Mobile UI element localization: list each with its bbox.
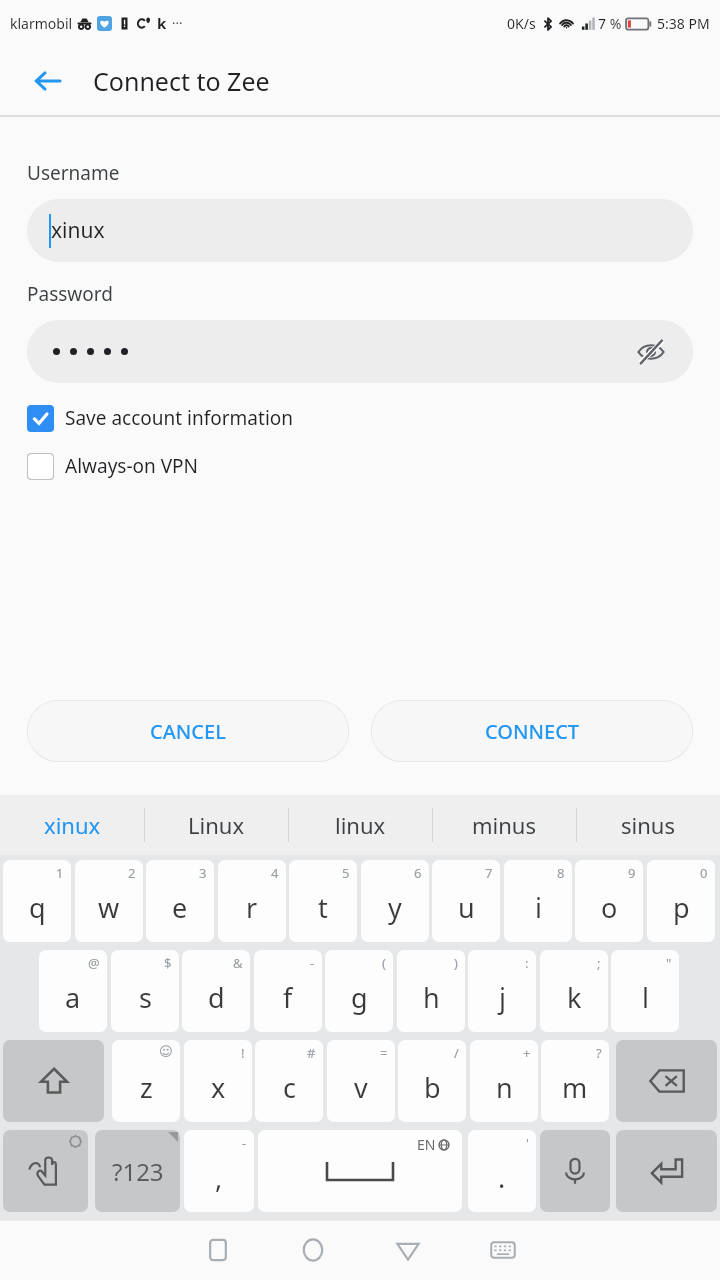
staticText: 3 [199, 864, 207, 882]
button[interactable]: p [647, 860, 715, 942]
staticText: r [246, 889, 258, 926]
staticText: Username [27, 160, 120, 186]
button[interactable]: Handwriting [3, 1130, 88, 1212]
button[interactable]: . [468, 1130, 536, 1212]
button[interactable]: s [111, 950, 179, 1032]
staticText: 9 [628, 864, 636, 882]
button[interactable]: Hide keyboard [455, 1220, 550, 1280]
button[interactable]: v [327, 1040, 395, 1122]
button[interactable]: Save account information [27, 398, 693, 438]
button[interactable]: g [325, 950, 393, 1032]
staticText: CONNECT [485, 718, 580, 745]
staticText: ?123 [112, 1155, 164, 1188]
button[interactable]: h [397, 950, 465, 1032]
button[interactable]: CONNECT [371, 700, 693, 762]
staticText: t [318, 889, 328, 926]
button[interactable]: Enter [616, 1130, 717, 1212]
staticText: : [525, 954, 529, 972]
button[interactable]: i [504, 860, 572, 942]
button[interactable]: l [611, 950, 679, 1032]
button[interactable]: Shift [3, 1040, 104, 1122]
staticText: k [567, 979, 582, 1016]
button[interactable]: ?123 [95, 1130, 180, 1212]
staticText: h [423, 979, 440, 1016]
staticText: f [283, 979, 293, 1016]
staticText: minus [472, 810, 536, 840]
staticText: s [139, 979, 152, 1016]
staticText: = [380, 1044, 388, 1062]
button[interactable]: o [575, 860, 643, 942]
staticText: " [666, 954, 672, 972]
button[interactable]: c [255, 1040, 323, 1122]
staticText: 7 [485, 864, 493, 882]
button[interactable]: , [184, 1130, 254, 1212]
staticText: ) [454, 954, 458, 972]
staticText: w [98, 889, 120, 926]
button[interactable]: r [218, 860, 286, 942]
staticText: sinus [621, 810, 675, 840]
button[interactable]: linux [288, 795, 432, 855]
button[interactable]: d [182, 950, 250, 1032]
staticText: ! [241, 1044, 245, 1062]
staticText: n [496, 1069, 513, 1106]
staticText: o [601, 889, 618, 926]
button[interactable]: q [3, 860, 71, 942]
staticText: g [351, 979, 368, 1016]
staticText: ' [526, 1134, 529, 1152]
staticText: 5 [342, 864, 350, 882]
button[interactable]: t [289, 860, 357, 942]
button[interactable]: Recent apps [170, 1220, 265, 1280]
button[interactable]: k [540, 950, 608, 1032]
staticText: Always-on VPN [65, 453, 199, 479]
staticText: 6 [414, 864, 422, 882]
button[interactable]: x [184, 1040, 252, 1122]
button[interactable]: CANCEL [27, 700, 349, 762]
staticText: # [307, 1044, 316, 1062]
staticText: c [283, 1069, 296, 1106]
button[interactable]: Home [265, 1220, 360, 1280]
button[interactable]: Always-on VPN [27, 446, 693, 486]
button[interactable]: b [398, 1040, 466, 1122]
staticText: j [499, 979, 506, 1016]
button[interactable]: w [75, 860, 143, 942]
button[interactable]: m [541, 1040, 609, 1122]
button[interactable]: Linux [144, 795, 288, 855]
button[interactable]: j [468, 950, 536, 1032]
staticText: x [211, 1069, 226, 1106]
staticText: Password [27, 281, 113, 307]
button[interactable]: n [470, 1040, 538, 1122]
staticText: y [388, 889, 402, 926]
button[interactable]: Back [20, 53, 76, 109]
staticText: + [523, 1044, 531, 1062]
staticText: Linux [188, 810, 245, 840]
staticText: p [673, 889, 690, 926]
button[interactable]: y [361, 860, 429, 942]
button[interactable]: Show password [27, 320, 693, 383]
button[interactable]: a [39, 950, 107, 1032]
button[interactable]: Space [258, 1130, 462, 1212]
staticText: . [498, 1159, 506, 1196]
button[interactable]: Back [360, 1220, 455, 1280]
staticText: a [65, 979, 81, 1016]
button[interactable]: sinus [576, 795, 720, 855]
staticText: l [642, 979, 649, 1016]
button[interactable]: u [432, 860, 500, 942]
button[interactable]: e [146, 860, 214, 942]
button[interactable]: xinux [27, 199, 693, 262]
staticText: ☺ [159, 1044, 173, 1059]
button[interactable]: f [254, 950, 322, 1032]
staticText: CANCEL [150, 718, 226, 745]
staticText: u [458, 889, 475, 926]
staticText: ··· [172, 14, 183, 32]
staticText: , [215, 1159, 223, 1196]
button[interactable]: minus [432, 795, 576, 855]
button[interactable]: Show password [629, 330, 673, 374]
button[interactable]: xinux [0, 795, 144, 855]
button[interactable]: Voice input [540, 1130, 610, 1212]
staticText: $ [164, 954, 172, 972]
staticText: 0 [700, 864, 708, 882]
button[interactable]: z [112, 1040, 180, 1122]
staticText: 7 % [598, 14, 622, 33]
button[interactable]: Backspace [616, 1040, 717, 1122]
staticText: Save account information [65, 405, 294, 431]
